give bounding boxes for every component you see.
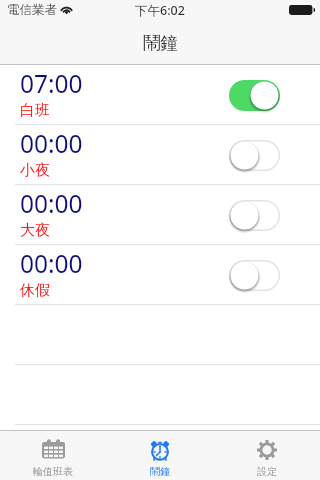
- staticText: 07:00: [20, 67, 83, 100]
- button[interactable]: Alarm enabled: [229, 80, 280, 111]
- staticText: 鬧鐘: [150, 465, 170, 478]
- staticText: 00:00: [20, 127, 83, 160]
- button[interactable]: Alarm disabled: [229, 260, 280, 291]
- button[interactable]: 鬧鐘: [106, 431, 213, 480]
- staticText: 下午6:02: [135, 2, 185, 19]
- button[interactable]: 00:00: [0, 245, 320, 305]
- staticText: 鬧鐘: [143, 32, 178, 54]
- staticText: 小夜: [20, 161, 50, 180]
- staticText: 休假: [20, 281, 50, 300]
- staticText: 設定: [257, 465, 277, 478]
- staticText: 電信業者: [7, 2, 57, 18]
- button[interactable]: 07:00: [0, 65, 320, 125]
- staticText: 輪值班表: [33, 465, 73, 478]
- button[interactable]: Alarm disabled: [229, 200, 280, 231]
- button[interactable]: 00:00: [0, 185, 320, 245]
- button[interactable]: Alarm disabled: [229, 140, 280, 171]
- staticText: 00:00: [20, 247, 83, 280]
- staticText: 大夜: [20, 221, 50, 240]
- button[interactable]: 設定: [213, 431, 320, 480]
- button[interactable]: 00:00: [0, 125, 320, 185]
- button[interactable]: 輪值班表: [0, 431, 106, 480]
- staticText: 00:00: [20, 187, 83, 220]
- staticText: 白班: [20, 101, 50, 120]
